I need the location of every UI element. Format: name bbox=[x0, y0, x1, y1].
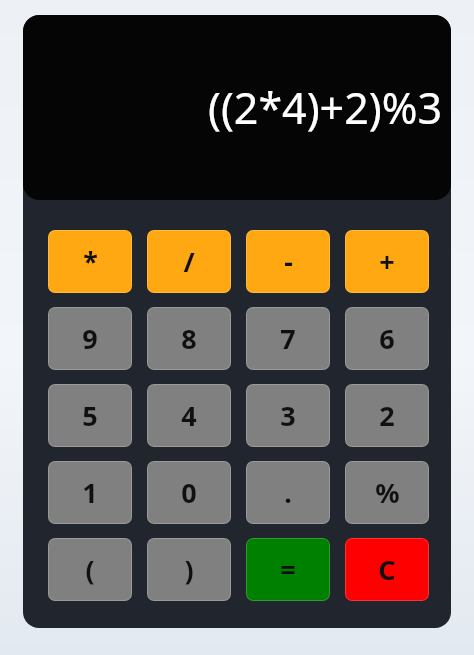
button[interactable]: 1 bbox=[48, 461, 132, 524]
button[interactable]: * bbox=[48, 230, 132, 293]
button[interactable]: 7 bbox=[246, 307, 330, 370]
button[interactable]: % bbox=[345, 461, 429, 524]
staticText: + bbox=[379, 243, 395, 280]
staticText: / bbox=[183, 243, 195, 280]
staticText: ((2*4)+2)%3 bbox=[207, 78, 442, 137]
staticText: 4 bbox=[181, 397, 197, 434]
staticText: ( bbox=[85, 551, 95, 588]
button[interactable]: / bbox=[147, 230, 231, 293]
button[interactable]: ((2*4)+2)%3 bbox=[23, 15, 451, 200]
button[interactable]: 6 bbox=[345, 307, 429, 370]
staticText: 2 bbox=[379, 397, 395, 434]
button[interactable]: 3 bbox=[246, 384, 330, 447]
staticText: 1 bbox=[82, 474, 98, 511]
button[interactable]: ( bbox=[48, 538, 132, 601]
button[interactable]: . bbox=[246, 461, 330, 524]
button[interactable]: - bbox=[246, 230, 330, 293]
button[interactable]: 9 bbox=[48, 307, 132, 370]
button[interactable]: ) bbox=[147, 538, 231, 601]
button[interactable]: + bbox=[345, 230, 429, 293]
button[interactable]: 4 bbox=[147, 384, 231, 447]
staticText: 0 bbox=[181, 474, 197, 511]
staticText: ) bbox=[184, 551, 194, 588]
staticText: C bbox=[378, 551, 396, 588]
staticText: 7 bbox=[280, 320, 296, 357]
staticText: - bbox=[284, 243, 293, 280]
staticText: . bbox=[284, 474, 292, 511]
button[interactable]: = bbox=[246, 538, 330, 601]
button[interactable]: 2 bbox=[345, 384, 429, 447]
button[interactable]: C bbox=[345, 538, 429, 601]
staticText: 3 bbox=[280, 397, 296, 434]
staticText: = bbox=[280, 551, 296, 588]
staticText: * bbox=[83, 243, 98, 280]
button[interactable]: 5 bbox=[48, 384, 132, 447]
staticText: 9 bbox=[82, 320, 98, 357]
staticText: 5 bbox=[82, 397, 98, 434]
button[interactable]: 8 bbox=[147, 307, 231, 370]
button[interactable]: 0 bbox=[147, 461, 231, 524]
staticText: 8 bbox=[181, 320, 197, 357]
staticText: % bbox=[375, 474, 400, 511]
staticText: 6 bbox=[379, 320, 395, 357]
